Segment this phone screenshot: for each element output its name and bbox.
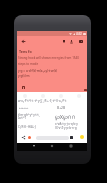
- staticText: Tens fo: [19, 49, 32, 54]
- staticText: ℘X℘∩∩: [55, 113, 76, 121]
- button[interactable]: Keyboard: [70, 136, 73, 139]
- button[interactable]: Step: [41, 94, 45, 98]
- button[interactable]: Next step: [80, 135, 84, 139]
- staticText: B+2B: [57, 105, 66, 109]
- staticText: C∫R·K−H&L·J: [18, 125, 36, 129]
- button[interactable]: Share: [21, 135, 25, 139]
- button[interactable]: Download: [68, 38, 75, 45]
- staticText: w·x₁·P·t²·l·t ·t²·y·∑ ∫F←·ξ ·t²·∇·x₁·P·t: [18, 99, 67, 103]
- staticText: y·g = a·d·f(t)·m(x₁+y)·t·w(t): [18, 69, 57, 73]
- button[interactable]: Tag: [22, 86, 25, 89]
- staticText: Strong hook will shown energies from 154…: [18, 56, 80, 60]
- staticText: (X·∀·Z·y·p·b·n·g: [55, 126, 77, 130]
- staticText: 4:32: [76, 32, 82, 36]
- button[interactable]: Back: [32, 144, 36, 148]
- staticText: y·g(t)·m: [18, 74, 30, 78]
- button[interactable]: Step: [59, 94, 63, 98]
- staticText: steps to mode: [18, 62, 39, 66]
- staticText: x·∀A·t·y·j·x·q·b·y: [55, 122, 78, 126]
- button[interactable]: Recents: [69, 144, 73, 148]
- staticText: t/m·gh²·y²·y·t·t,: [18, 113, 40, 117]
- button[interactable]: Video: [77, 38, 84, 45]
- button[interactable]: Bookmark: [60, 38, 67, 45]
- button[interactable]: Back: [20, 38, 27, 45]
- staticText: Ia·t²·l: [18, 116, 26, 120]
- staticText: ⊷⊷⊷: [19, 106, 29, 110]
- button[interactable]: Record: [28, 136, 31, 139]
- button[interactable]: Step: [77, 94, 81, 98]
- button[interactable]: Home: [50, 144, 54, 148]
- button[interactable]: Step: [23, 94, 27, 98]
